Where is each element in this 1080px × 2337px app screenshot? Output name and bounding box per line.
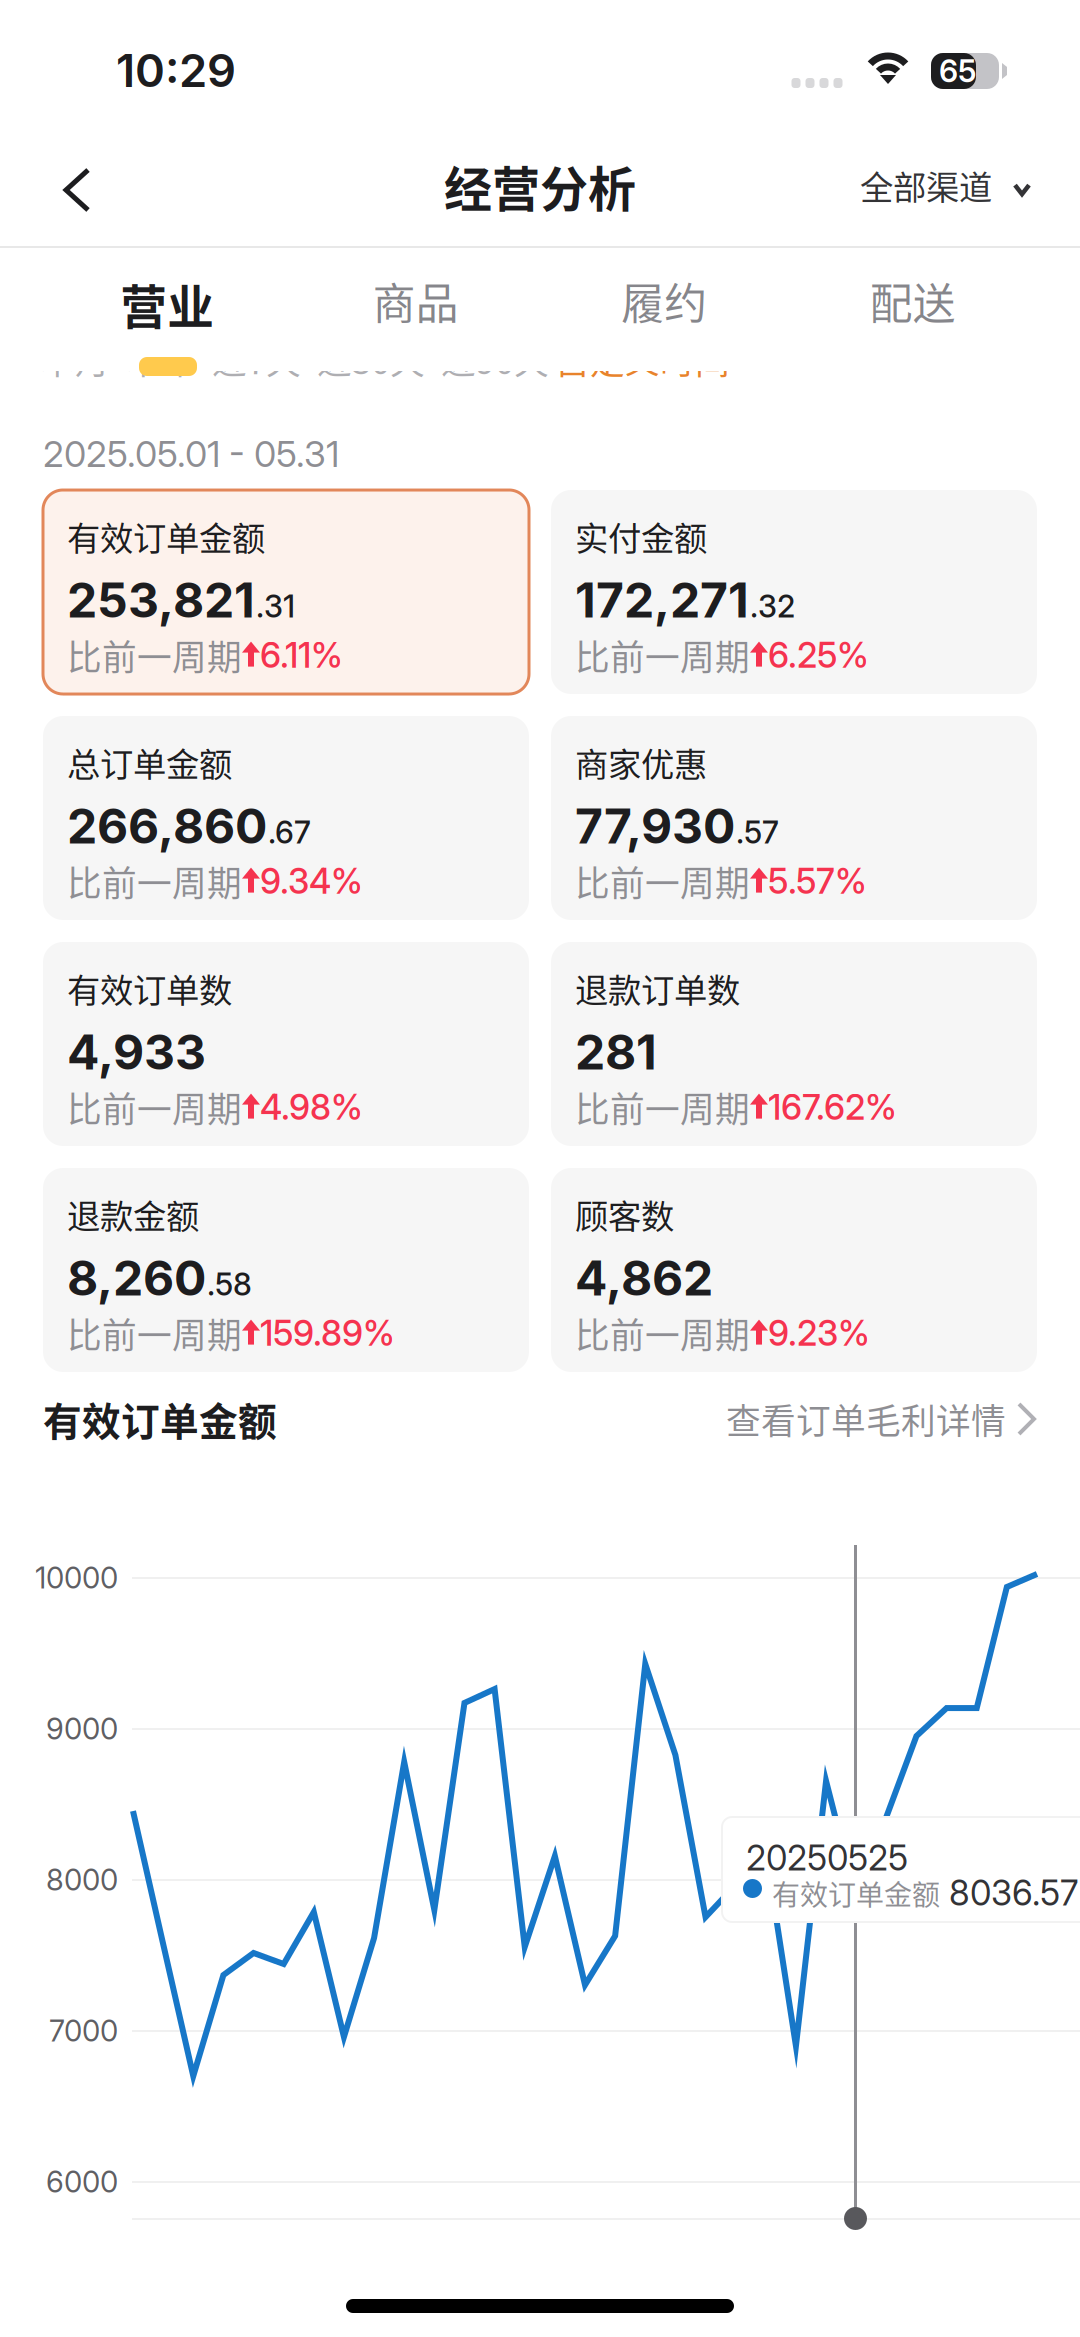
staticText: 比前一周期 <box>67 630 242 680</box>
staticText: 全部渠道 <box>860 161 992 209</box>
staticText: 配送 <box>870 270 956 332</box>
staticText: 9.23% <box>768 1312 870 1354</box>
staticText: 9000 <box>46 1711 118 1746</box>
staticText: 退款订单数 <box>575 964 740 1012</box>
staticText: 7000 <box>49 2013 118 2048</box>
staticText: 有效订单数 <box>67 964 232 1012</box>
button[interactable]: 顾客数 <box>551 1168 1037 1372</box>
staticText: 6.25% <box>768 634 869 676</box>
staticText: 比前一周期 <box>67 856 242 906</box>
button[interactable]: 有效订单金额 <box>43 490 529 694</box>
staticText: 有效订单金额 <box>43 1391 277 1447</box>
staticText: 比前一周期 <box>575 1308 750 1358</box>
button[interactable]: 商品 <box>291 270 540 342</box>
staticText: 自定义时间 <box>555 334 730 384</box>
staticText: 4,933 <box>67 1023 206 1081</box>
staticText: 经营分析 <box>444 151 636 220</box>
button[interactable]: 实付金额 <box>551 490 1037 694</box>
staticText: 有效订单金额 <box>772 1873 940 1913</box>
staticText: 2025.05.01 - 05.31 <box>43 432 339 476</box>
staticText: 商家优惠 <box>575 738 707 786</box>
staticText: 有效订单金额 <box>67 512 265 560</box>
staticText: 10000 <box>35 1560 118 1595</box>
button[interactable]: 有效订单数 <box>43 942 529 1146</box>
button[interactable]: 返回 <box>29 142 125 238</box>
staticText: 253,821 <box>67 571 255 629</box>
staticText: .67 <box>268 814 311 851</box>
staticText: 营业 <box>120 270 214 338</box>
staticText: 比前一周期 <box>575 1082 750 1132</box>
button[interactable]: 商家优惠 <box>551 716 1037 920</box>
button[interactable]: 总订单金额 <box>43 716 529 920</box>
staticText: 比前一周期 <box>575 856 750 906</box>
staticText: 比前一周期 <box>67 1082 242 1132</box>
staticText: 65 <box>939 52 976 89</box>
staticText: 5.57% <box>768 860 867 902</box>
staticText: 159.89% <box>260 1312 395 1354</box>
staticText: 退款金额 <box>67 1190 199 1238</box>
staticText: 实付金额 <box>575 512 707 560</box>
staticText: 8000 <box>46 1862 118 1897</box>
staticText: 总订单金额 <box>67 738 232 786</box>
staticText: .58 <box>207 1266 252 1303</box>
button[interactable]: 全部渠道 <box>846 135 1045 235</box>
staticText: 8036.57 <box>949 1872 1078 1914</box>
staticText: 167.62% <box>768 1086 897 1128</box>
staticText: 10:29 <box>116 43 236 98</box>
staticText: .31 <box>256 588 295 625</box>
staticText: 6000 <box>46 2164 118 2199</box>
button[interactable]: 配送 <box>788 270 1037 342</box>
staticText: 6.11% <box>260 634 343 676</box>
staticText: 4,862 <box>575 1249 713 1307</box>
staticText: 281 <box>575 1023 657 1081</box>
button[interactable]: 退款金额 <box>43 1168 529 1372</box>
staticText: 本月 本年 近7天 近30天 近90天 <box>40 334 549 384</box>
staticText: 77,930 <box>575 797 735 855</box>
staticText: 8,260 <box>67 1249 206 1307</box>
staticText: 履约 <box>621 270 707 332</box>
staticText: 商品 <box>373 270 459 332</box>
staticText: 266,860 <box>67 797 267 855</box>
button[interactable]: 退款订单数 <box>551 942 1037 1146</box>
staticText: 比前一周期 <box>67 1308 242 1358</box>
staticText: 查看订单毛利详情 <box>726 1394 1006 1444</box>
staticText: 9.34% <box>260 860 363 902</box>
button[interactable]: 查看订单毛利详情 <box>726 1394 1037 1444</box>
staticText: 172,271 <box>575 571 749 629</box>
staticText: 顾客数 <box>575 1190 674 1238</box>
button[interactable]: 营业 <box>43 270 291 342</box>
staticText: .57 <box>736 814 779 851</box>
button[interactable]: 履约 <box>540 270 788 342</box>
staticText: 比前一周期 <box>575 630 750 680</box>
staticText: 20250525 <box>746 1837 908 1879</box>
staticText: 4.98% <box>260 1086 363 1128</box>
staticText: .32 <box>750 588 795 625</box>
